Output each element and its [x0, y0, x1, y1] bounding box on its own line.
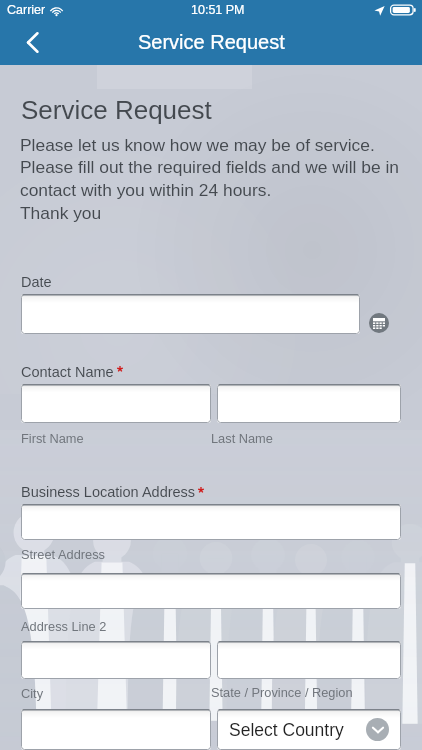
- button[interactable]: [21, 573, 401, 609]
- button[interactable]: [21, 384, 211, 423]
- staticText: Service Request: [21, 95, 212, 124]
- button[interactable]: [21, 504, 401, 540]
- staticText: Date: [21, 274, 52, 290]
- button[interactable]: [21, 294, 360, 334]
- staticText: Last Name: [211, 431, 273, 445]
- button[interactable]: Select Country: [217, 709, 401, 750]
- staticText: Address Line 2: [21, 619, 107, 633]
- staticText: State / Province / Region: [211, 685, 353, 699]
- button[interactable]: [21, 641, 211, 679]
- staticText: 10:51 PM: [191, 3, 245, 17]
- button[interactable]: [21, 709, 211, 750]
- staticText: Select Country: [229, 720, 344, 740]
- button[interactable]: Back: [0, 20, 58, 65]
- staticText: First Name: [21, 431, 84, 445]
- staticText: Service Request: [138, 31, 285, 53]
- staticText: Carrier: [7, 3, 46, 17]
- staticText: Contact Name: [21, 364, 114, 380]
- staticText: Business Location Address: [21, 484, 196, 500]
- staticText: City: [21, 686, 44, 700]
- button[interactable]: [217, 641, 401, 679]
- staticText: Please let us know how we may be of serv…: [20, 135, 399, 223]
- staticText: Street Address: [21, 547, 105, 561]
- button[interactable]: [217, 384, 401, 423]
- button[interactable]: Pick a date: [369, 313, 389, 333]
